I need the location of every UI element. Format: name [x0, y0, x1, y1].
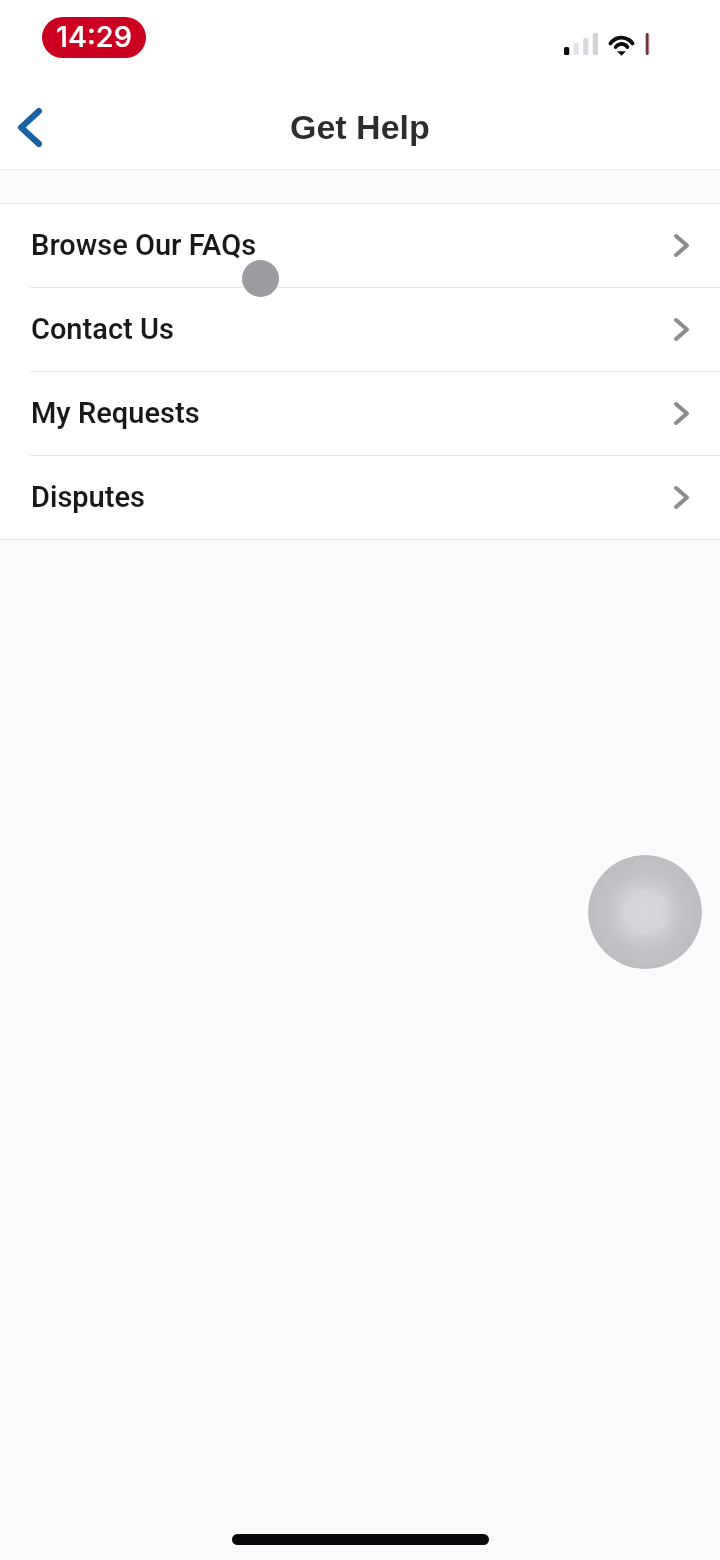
staticText: My Requests	[31, 396, 200, 430]
button[interactable]: AssistiveTouch	[588, 855, 702, 969]
button[interactable]: Back	[0, 88, 72, 169]
button[interactable]: Browse Our FAQs	[0, 204, 720, 287]
button[interactable]: Disputes	[0, 456, 720, 539]
button[interactable]: Return to call, 14:29	[42, 17, 146, 58]
staticText: 14:29	[56, 19, 132, 54]
button[interactable]: My Requests	[0, 372, 720, 455]
button[interactable]: Contact Us	[0, 288, 720, 371]
staticText: Browse Our FAQs	[31, 228, 257, 262]
staticText: Contact Us	[31, 312, 174, 346]
staticText: Get Help	[290, 108, 430, 146]
staticText: Disputes	[31, 480, 146, 514]
